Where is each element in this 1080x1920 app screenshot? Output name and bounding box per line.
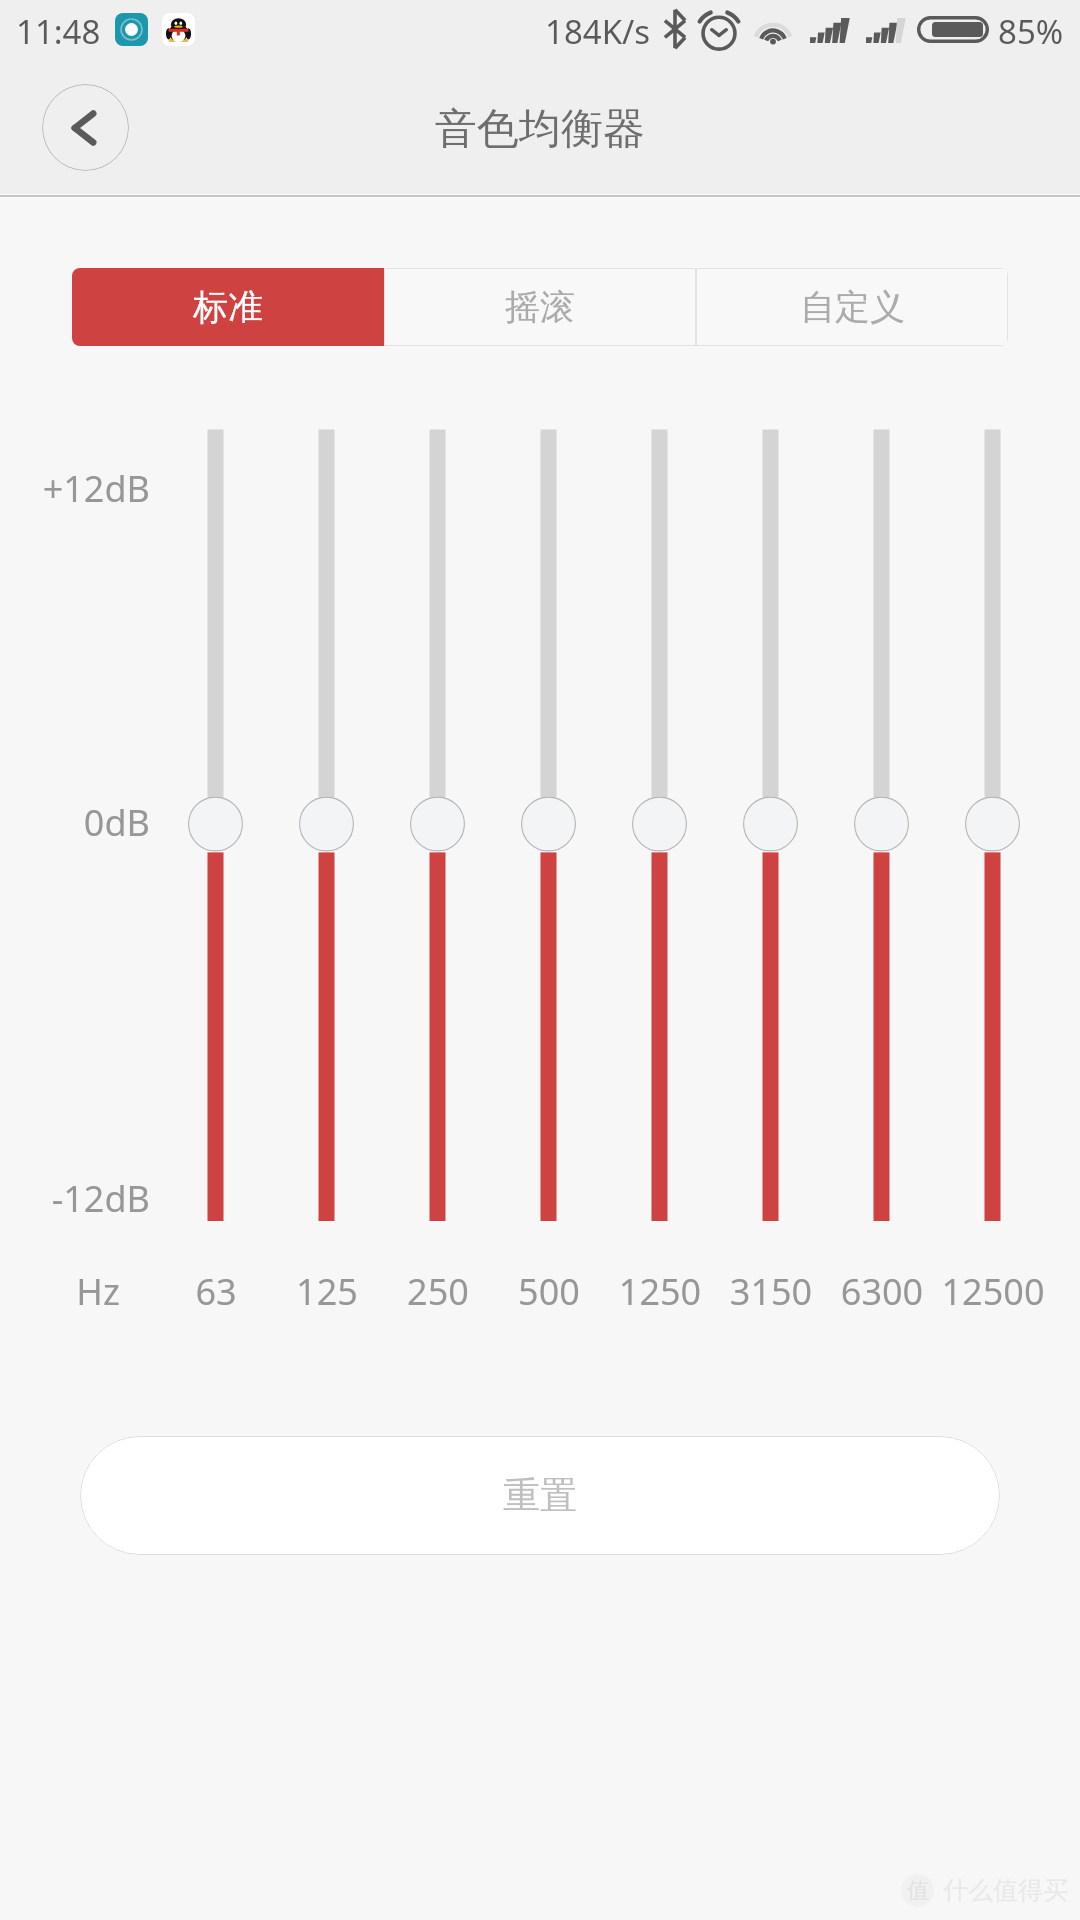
staticText: 音色均衡器 xyxy=(0,103,1080,194)
staticText: 3150 xyxy=(696,1267,846,1316)
staticText: +12dB xyxy=(0,464,150,513)
staticText: 500 xyxy=(474,1267,624,1316)
button[interactable]: 63 Hz band xyxy=(178,410,254,1240)
staticText: 250 xyxy=(363,1267,513,1316)
button[interactable]: 自定义 xyxy=(696,268,1008,346)
staticText: 自定义 xyxy=(800,285,905,329)
staticText: -12dB xyxy=(0,1174,150,1223)
staticText: 值 xyxy=(907,1877,929,1905)
button[interactable]: 250 Hz band xyxy=(400,410,476,1240)
button[interactable]: 1250 Hz band xyxy=(622,410,698,1240)
staticText: Hz xyxy=(23,1267,173,1316)
button[interactable]: 重置 xyxy=(80,1436,1000,1555)
staticText: 11:48 xyxy=(16,9,101,54)
staticText: 1250 xyxy=(585,1267,735,1316)
button[interactable]: Back xyxy=(42,84,129,171)
staticText: 12500 xyxy=(918,1267,1068,1316)
staticText: 184K/s xyxy=(545,9,651,54)
button[interactable]: 500 Hz band xyxy=(511,410,587,1240)
staticText: 6300 xyxy=(807,1267,957,1316)
staticText: 125 xyxy=(252,1267,402,1316)
button[interactable]: 3150 Hz band xyxy=(733,410,809,1240)
staticText: 什么值得买 xyxy=(943,1875,1068,1906)
staticText: 重置 xyxy=(503,1472,577,1519)
staticText: 85% xyxy=(998,9,1064,54)
staticText: 0dB xyxy=(0,798,150,847)
button[interactable]: 6300 Hz band xyxy=(844,410,920,1240)
staticText: 标准 xyxy=(193,285,263,329)
button[interactable]: 125 Hz band xyxy=(289,410,365,1240)
button[interactable]: 标准 xyxy=(72,268,384,346)
staticText: 63 xyxy=(141,1267,291,1316)
staticText: 摇滚 xyxy=(505,285,575,329)
button[interactable]: 摇滚 xyxy=(384,268,696,346)
button[interactable]: 12500 Hz band xyxy=(955,410,1031,1240)
